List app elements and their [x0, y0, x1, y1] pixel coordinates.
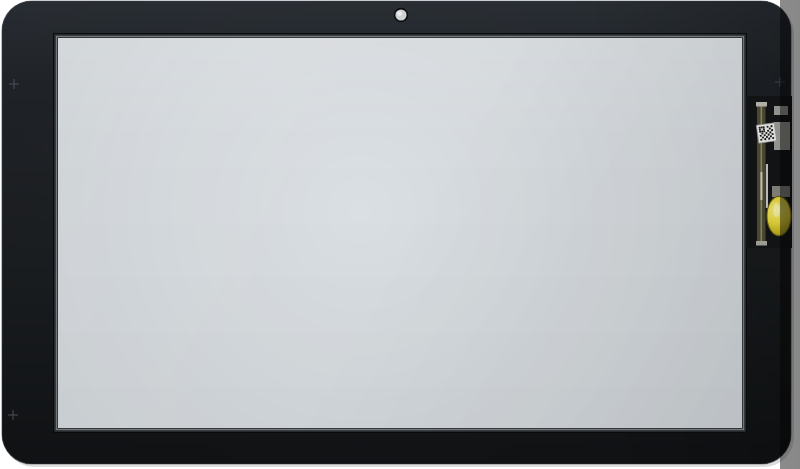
- button[interactable]: Tablet touch screen digitizer panel phot…: [0, 0, 800, 469]
